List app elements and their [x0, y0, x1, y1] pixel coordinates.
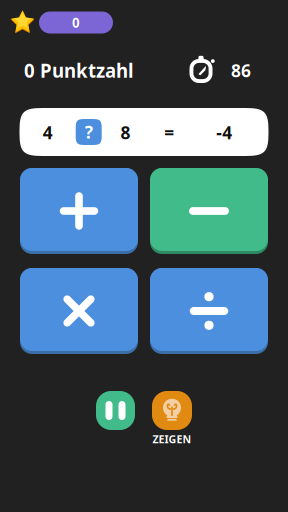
staticText: 86 — [231, 59, 251, 82]
staticText: 4 — [43, 121, 53, 144]
button[interactable]: Pause — [96, 391, 135, 430]
staticText: 8 — [121, 121, 131, 144]
button[interactable]: ZEIGEN — [152, 391, 192, 446]
staticText: 0 — [72, 14, 80, 31]
button[interactable]: Minus — [150, 168, 268, 254]
staticText: ? — [85, 120, 93, 143]
staticText: ZEIGEN — [152, 432, 191, 446]
staticText: = — [164, 121, 174, 144]
staticText: -4 — [216, 121, 232, 144]
button[interactable]: Divide — [150, 268, 268, 354]
button[interactable]: Plus — [20, 168, 138, 254]
button[interactable]: Multiply — [20, 268, 138, 354]
staticText: 0 Punktzahl — [24, 58, 134, 83]
